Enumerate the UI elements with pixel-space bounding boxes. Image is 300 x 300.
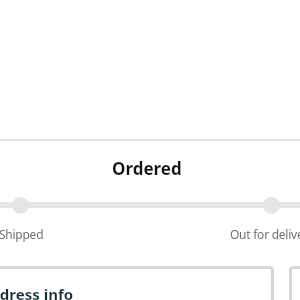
staticText: Shipped <box>0 226 44 242</box>
button[interactable]: Out for delivery stage <box>263 197 280 214</box>
button[interactable]: Address info <box>0 266 274 300</box>
staticText: Out for delivery <box>230 226 300 242</box>
button[interactable]: Shipped stage <box>12 197 29 214</box>
staticText: Ordered <box>112 157 182 180</box>
staticText: Address info <box>0 284 74 300</box>
button[interactable]: Payment info <box>289 266 300 300</box>
